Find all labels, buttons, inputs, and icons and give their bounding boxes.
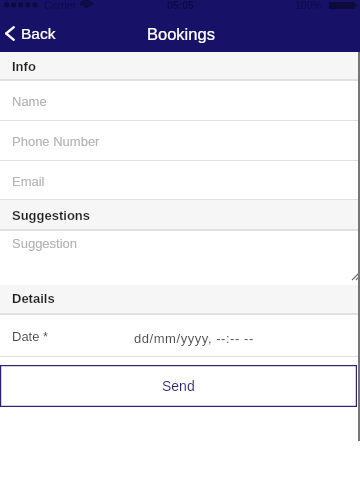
other: Back	[5, 26, 15, 41]
staticText: Suggestions	[12, 208, 91, 223]
staticText: Date *	[12, 329, 49, 344]
staticText: 100%	[295, 0, 322, 11]
button[interactable]: Back	[0, 23, 66, 48]
staticText: Back	[21, 25, 56, 42]
button[interactable]: Suggestion	[0, 231, 360, 285]
staticText: dd/mm/yyyy, --:-- --	[134, 331, 254, 346]
staticText: Email	[12, 174, 45, 189]
button[interactable]: Date *	[0, 315, 360, 357]
staticText: Carrier	[44, 0, 77, 11]
button[interactable]: Email	[0, 161, 360, 200]
staticText: Send	[162, 378, 195, 394]
staticText: Name	[12, 94, 47, 109]
button[interactable]: Phone Number	[0, 121, 360, 161]
staticText: 05:05	[167, 0, 194, 11]
staticText: Suggestion	[12, 236, 78, 251]
staticText: Info	[12, 59, 36, 74]
staticText: Bookings	[147, 25, 215, 43]
staticText: Details	[12, 291, 55, 306]
staticText: Phone Number	[12, 134, 100, 149]
button[interactable]: Send	[0, 365, 357, 407]
button[interactable]: Name	[0, 81, 360, 121]
